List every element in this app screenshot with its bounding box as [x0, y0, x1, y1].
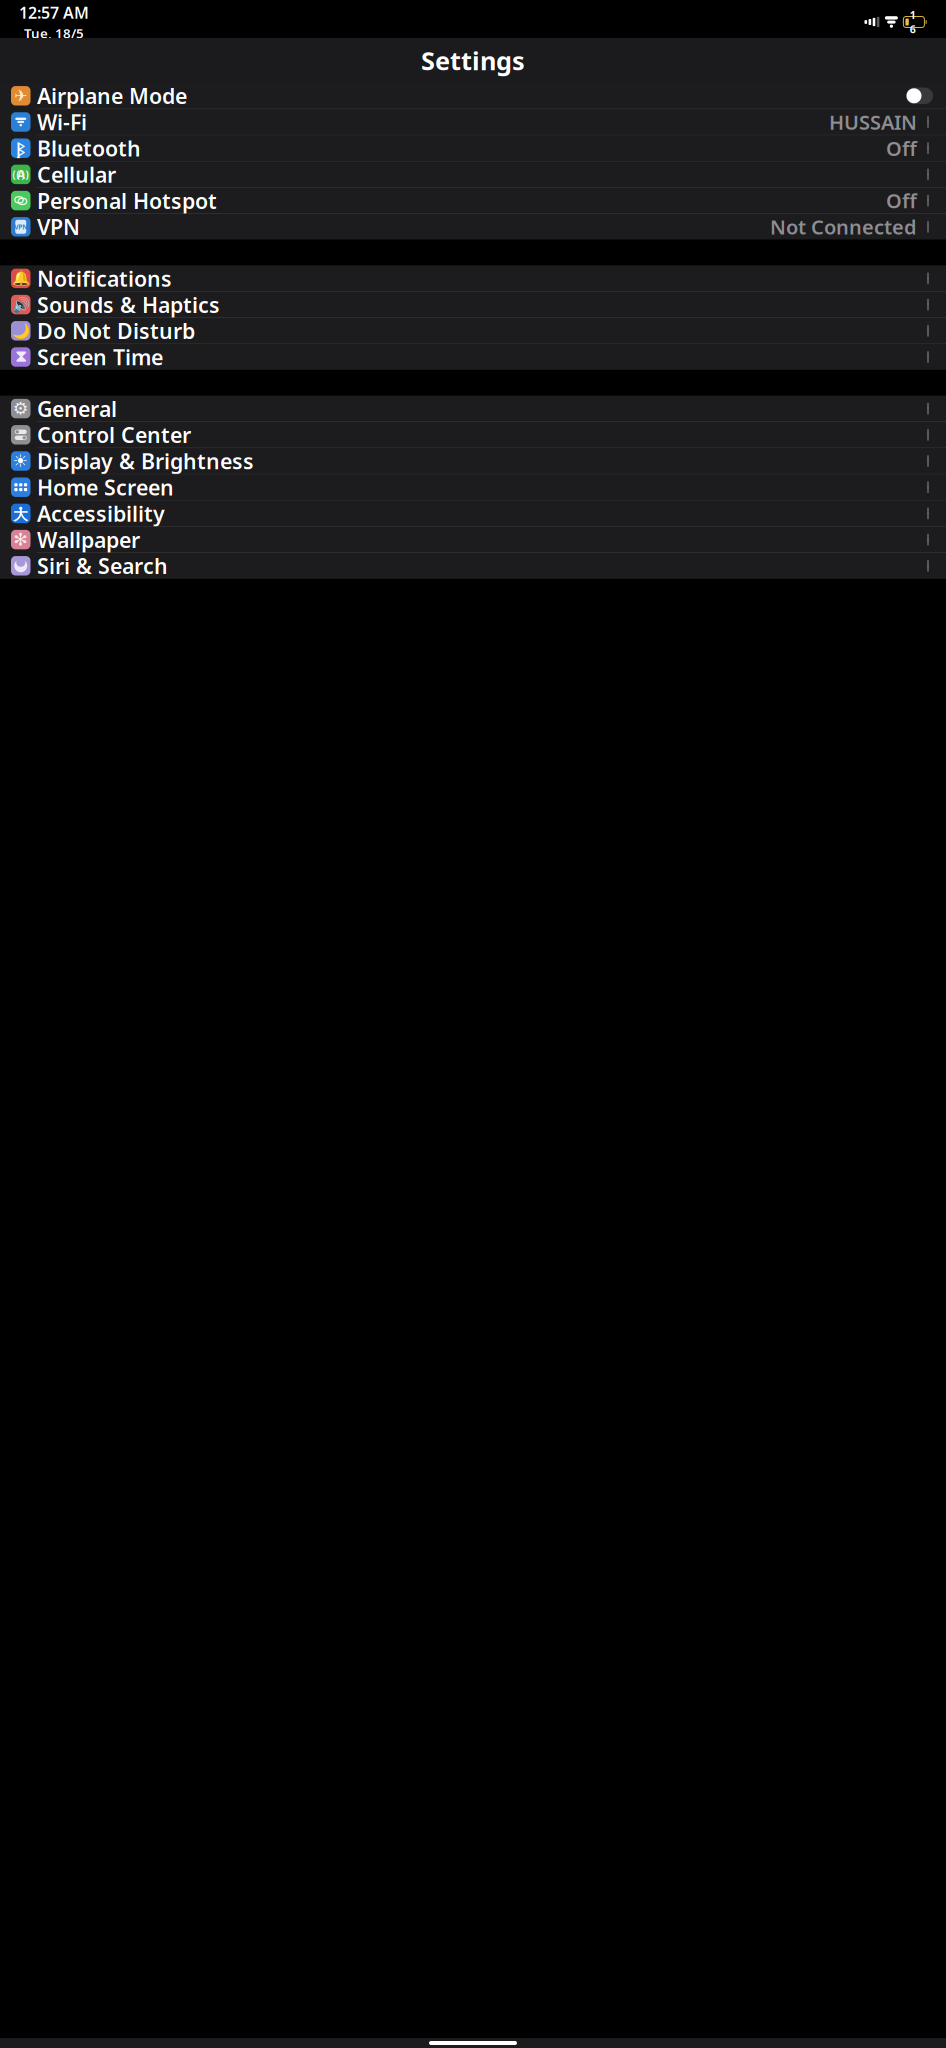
staticText: Display & Brightness — [37, 447, 254, 475]
button[interactable]: VPN — [0, 214, 946, 240]
staticText: Sounds & Haptics — [37, 290, 220, 319]
button[interactable]: ⚙ — [0, 396, 946, 421]
staticText: 12:57 AM — [19, 2, 89, 23]
staticText: Wallpaper — [37, 525, 140, 554]
staticText: Home Screen — [37, 473, 174, 501]
staticText: VPN — [37, 213, 80, 241]
staticText: Off — [886, 135, 917, 161]
staticText: Accessibility — [37, 499, 165, 527]
button[interactable]: ᛒ — [0, 135, 946, 161]
staticText: 16 — [910, 8, 916, 36]
staticText: VPN — [14, 222, 27, 231]
button[interactable]: 🔔 — [0, 266, 946, 291]
staticText: Notifications — [37, 264, 172, 292]
staticText: ✈ — [14, 87, 27, 105]
staticText: ☀ — [13, 451, 29, 471]
staticText: Screen Time — [37, 343, 163, 371]
staticText: )) — [21, 167, 29, 181]
button[interactable]: Personal Hotspot — [0, 188, 946, 213]
staticText: Control Center — [37, 421, 191, 449]
staticText: ᛒ — [16, 137, 25, 159]
staticText: Cellular — [37, 160, 116, 188]
staticText: Not Connected — [770, 213, 917, 240]
staticText: 🌙 — [12, 322, 30, 339]
staticText: Wi-Fi — [37, 108, 87, 136]
button[interactable]: 大 — [0, 501, 946, 526]
staticText: ⚙ — [13, 399, 29, 418]
button[interactable]: (( — [0, 162, 946, 187]
staticText: A — [17, 166, 25, 182]
button[interactable]: ✻ — [0, 527, 946, 552]
staticText: Airplane Mode — [37, 82, 187, 110]
staticText: Settings — [421, 44, 525, 77]
staticText: Bluetooth — [37, 134, 141, 162]
staticText: 大 — [13, 506, 28, 524]
staticText: 🔔 — [12, 270, 30, 287]
button[interactable]: 🌙 — [0, 318, 946, 344]
button[interactable]: Home Screen — [0, 474, 946, 500]
staticText: (( — [12, 167, 20, 181]
button[interactable]: 🔊 — [0, 292, 946, 317]
staticText: ⧗ — [15, 349, 26, 365]
button[interactable]: Wi-Fi — [0, 109, 946, 135]
button[interactable]: Control Center — [0, 422, 946, 448]
staticText: 🔊 — [12, 296, 30, 313]
staticText: Personal Hotspot — [37, 186, 217, 215]
staticText: Tue, 18/5 — [24, 24, 84, 42]
button[interactable]: ⧗ — [0, 344, 946, 370]
button[interactable]: Siri & Search — [0, 553, 946, 579]
staticText: Siri & Search — [37, 552, 168, 580]
staticText: Do Not Disturb — [37, 317, 195, 345]
button[interactable]: ☀ — [0, 448, 946, 474]
staticText: ✻ — [13, 530, 28, 549]
button[interactable]: ✈ — [0, 83, 946, 109]
staticText: HUSSAIN — [829, 109, 917, 135]
staticText: General — [37, 394, 117, 423]
staticText: Off — [886, 187, 917, 214]
